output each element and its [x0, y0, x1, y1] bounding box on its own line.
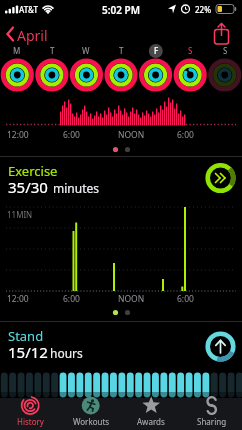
staticText: 11MIN: [7, 209, 33, 220]
staticText: April: [17, 26, 48, 45]
staticText: minutes: [53, 180, 99, 196]
staticText: History: [17, 416, 44, 427]
staticText: T: [50, 45, 55, 56]
staticText: 6:00: [177, 129, 194, 141]
staticText: W: [82, 45, 90, 56]
staticText: 15/12: [8, 342, 48, 362]
button[interactable]: [0, 323, 242, 363]
staticText: S: [223, 45, 228, 56]
staticText: 12:00: [7, 293, 29, 305]
button[interactable]: [0, 394, 60, 430]
staticText: M: [13, 45, 21, 56]
staticText: 6:00: [63, 129, 80, 141]
staticText: Sharing: [197, 416, 227, 427]
staticText: 12:00: [7, 129, 29, 141]
staticText: F: [154, 45, 159, 56]
button[interactable]: [61, 394, 121, 430]
staticText: NOON: [118, 293, 145, 305]
staticText: Exercise: [8, 162, 58, 180]
staticText: Workouts: [73, 416, 110, 427]
staticText: 35/30: [8, 177, 48, 197]
staticText: S: [188, 45, 193, 56]
button[interactable]: [210, 22, 234, 46]
staticText: Awards: [137, 416, 165, 427]
staticText: NOON: [118, 129, 145, 141]
staticText: hours: [50, 345, 83, 361]
staticText: 5:02 PM: [102, 3, 140, 17]
staticText: 6:00: [177, 293, 194, 305]
staticText: T: [119, 45, 124, 56]
button[interactable]: [0, 158, 242, 198]
staticText: 22%: [195, 4, 211, 15]
staticText: AT&T: [19, 4, 38, 15]
button[interactable]: [121, 394, 181, 430]
button[interactable]: [182, 394, 242, 430]
button[interactable]: [4, 24, 48, 44]
staticText: Stand: [8, 327, 44, 345]
staticText: 6:00: [63, 293, 80, 305]
